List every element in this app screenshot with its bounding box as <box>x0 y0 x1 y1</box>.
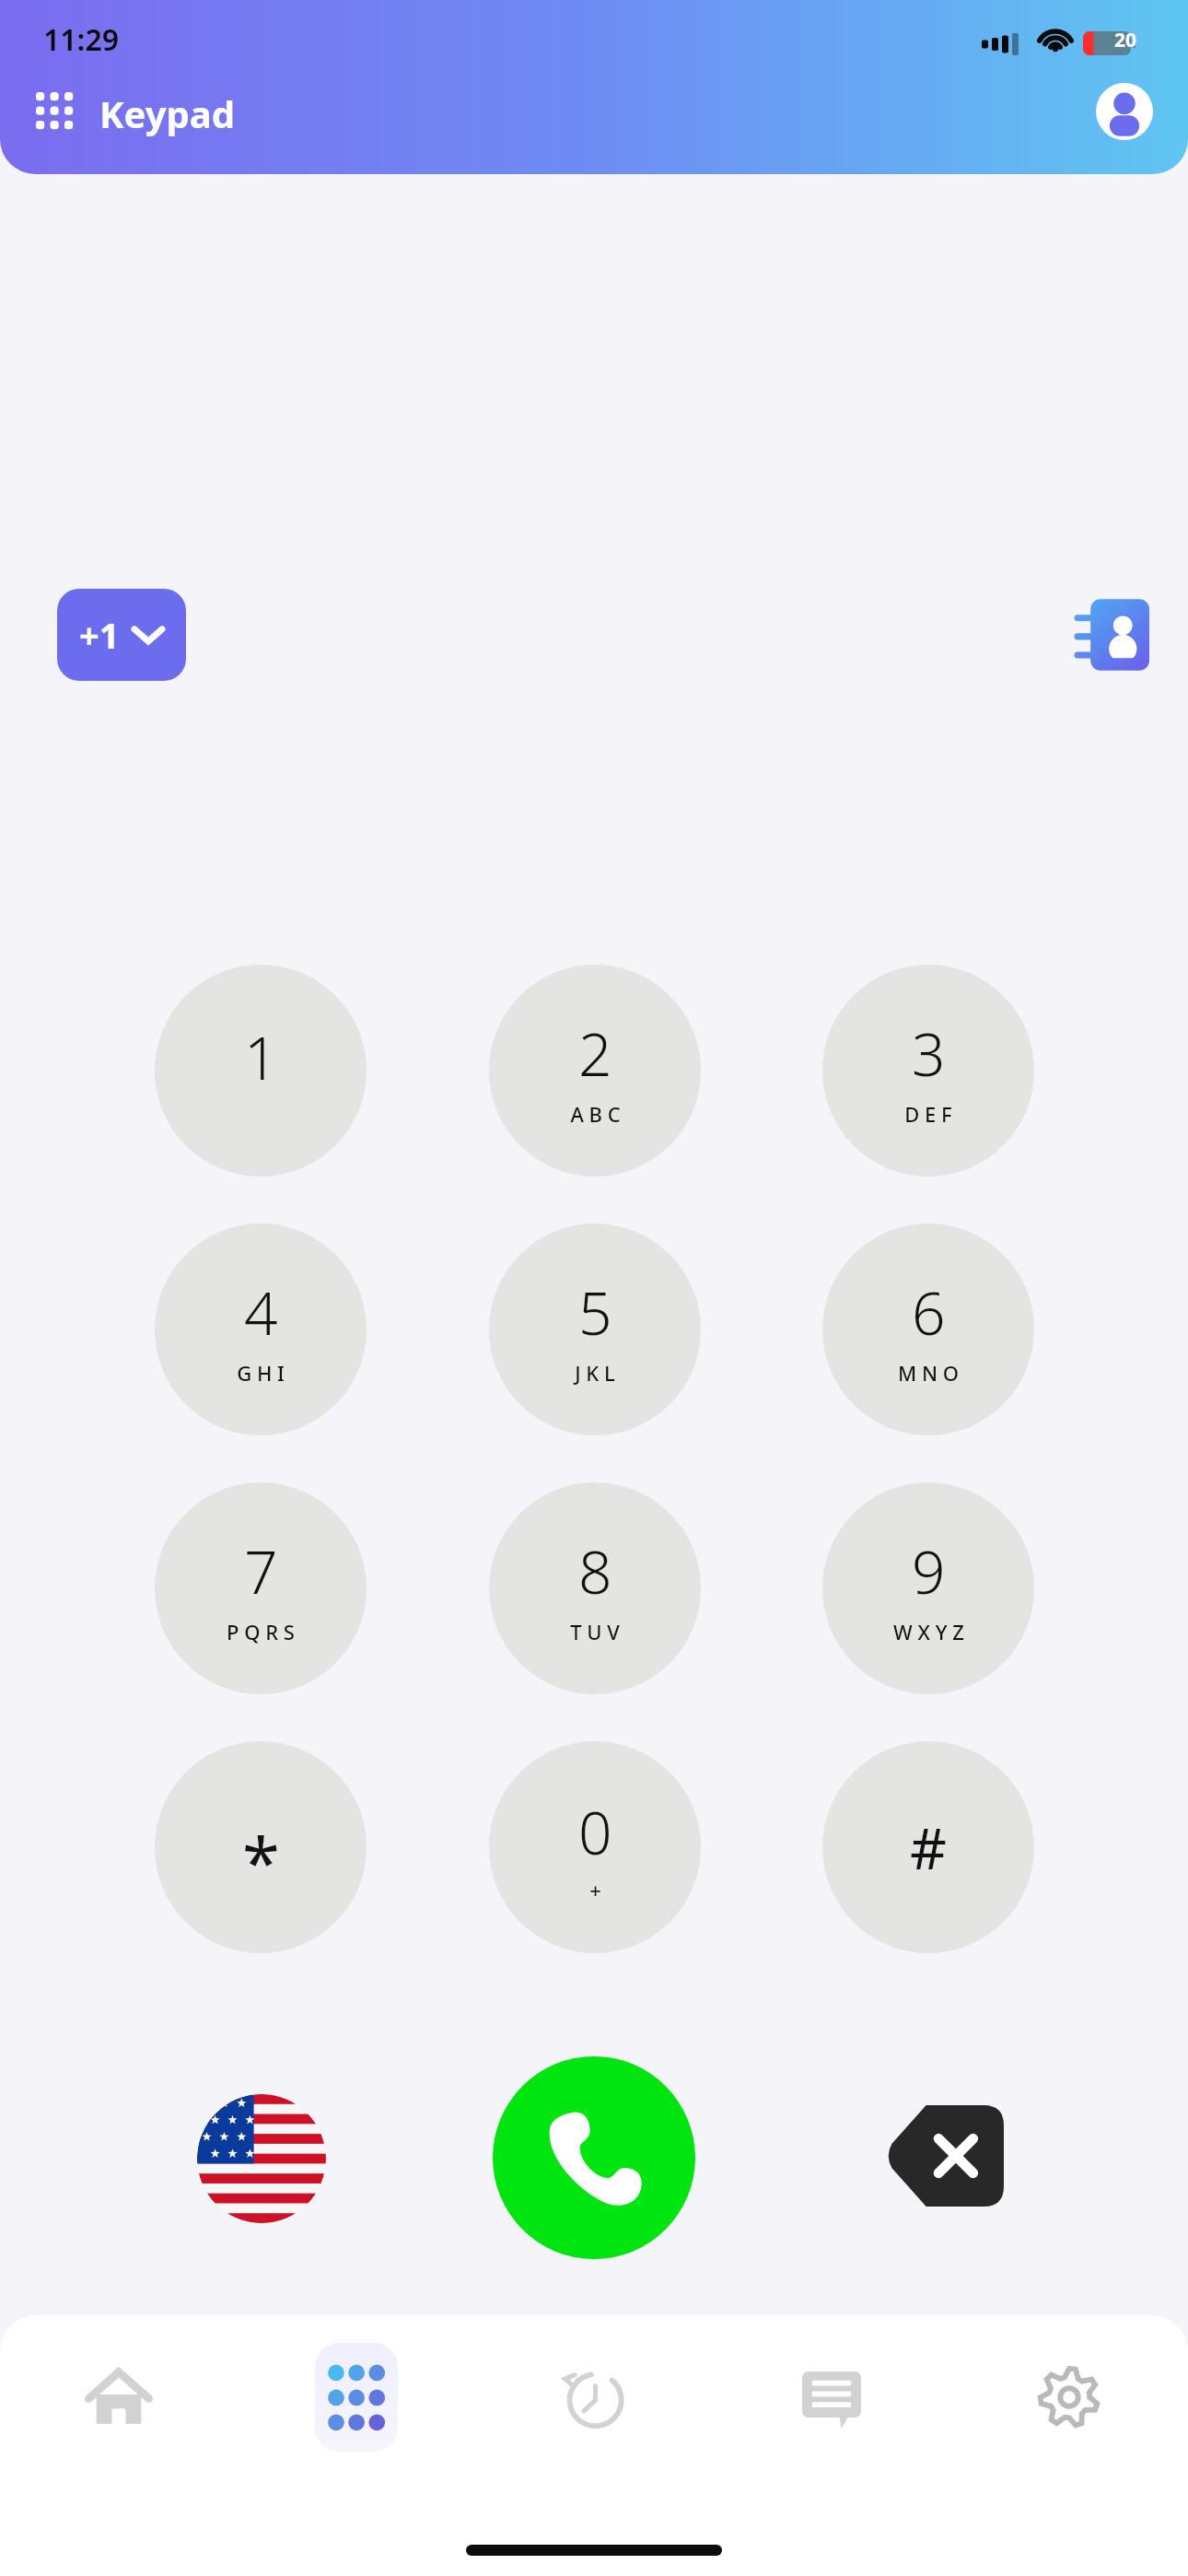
button[interactable]: 6 <box>822 1224 1034 1435</box>
staticText: W X Y Z <box>893 1618 964 1645</box>
staticText: G H I <box>237 1359 285 1387</box>
button[interactable]: 7 <box>155 1482 367 1694</box>
button[interactable]: Recents <box>475 2328 713 2466</box>
staticText: Keypad <box>99 88 235 138</box>
button[interactable]: 3 <box>822 965 1034 1177</box>
button[interactable]: +1 <box>57 589 186 681</box>
button[interactable]: # <box>822 1741 1034 1953</box>
staticText: 8 <box>578 1531 612 1611</box>
staticText: P Q R S <box>227 1618 295 1645</box>
button[interactable]: Call <box>493 2056 695 2259</box>
button[interactable]: Contacts <box>1072 596 1149 673</box>
button[interactable]: 8 <box>489 1482 701 1694</box>
button[interactable]: 1 <box>155 965 367 1177</box>
button[interactable]: Home <box>0 2328 238 2466</box>
staticText: 1 <box>244 1017 278 1097</box>
button[interactable]: * <box>155 1741 367 1953</box>
staticText: 9 <box>912 1531 946 1611</box>
button[interactable]: 9 <box>822 1482 1034 1694</box>
button[interactable]: Keypad <box>238 2328 475 2466</box>
staticText: 7 <box>244 1531 278 1611</box>
staticText: D E F <box>904 1100 952 1128</box>
button[interactable]: Country <box>197 2094 326 2223</box>
staticText: 2 <box>578 1013 612 1094</box>
button[interactable]: 5 <box>489 1224 701 1435</box>
staticText: 3 <box>912 1013 946 1094</box>
button[interactable]: 0 <box>489 1741 701 1953</box>
staticText: 0 <box>578 1792 612 1872</box>
staticText: + <box>589 1876 601 1903</box>
staticText: J K L <box>575 1359 615 1387</box>
button[interactable]: Delete <box>890 2105 1004 2207</box>
staticText: 11:29 <box>43 19 120 60</box>
button[interactable]: Profile <box>1096 83 1153 140</box>
staticText: * <box>242 1815 280 1908</box>
button[interactable]: 2 <box>489 965 701 1177</box>
staticText: # <box>910 1809 948 1886</box>
staticText: 6 <box>912 1272 946 1352</box>
staticText: T U V <box>570 1618 620 1645</box>
staticText: 20 <box>1114 27 1137 53</box>
button[interactable]: Settings <box>950 2328 1188 2466</box>
staticText: +1 <box>79 611 120 659</box>
staticText: A B C <box>570 1100 621 1128</box>
staticText: 5 <box>578 1272 612 1352</box>
staticText: M N O <box>898 1359 959 1387</box>
button[interactable]: 4 <box>155 1224 367 1435</box>
button[interactable]: Messages <box>713 2328 950 2466</box>
staticText: 4 <box>244 1272 278 1352</box>
